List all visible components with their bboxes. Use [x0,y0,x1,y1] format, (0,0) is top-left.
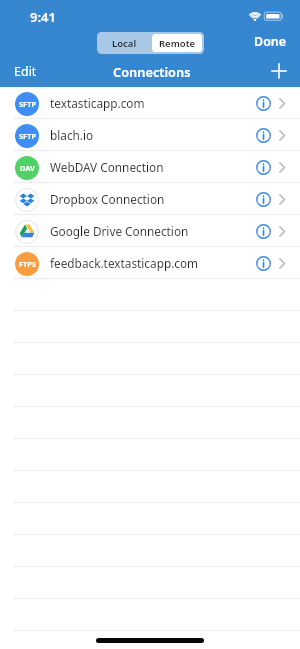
staticText: feedback.textasticapp.com [50,255,254,271]
button[interactable]: SFTP [0,87,300,118]
button[interactable]: Done [254,30,287,52]
staticText: Dropbox Connection [50,191,254,207]
button[interactable]: Add connection [266,58,292,84]
button[interactable]: Info [254,126,272,144]
staticText: blach.io [50,127,254,143]
button[interactable]: Info [254,158,272,176]
staticText: Connections [113,63,191,80]
staticText: 9:41 [30,8,56,26]
button[interactable]: Edit [14,58,37,84]
button[interactable]: DAV [0,151,300,182]
button[interactable]: Local [97,32,152,54]
staticText: SFTP [19,131,36,141]
button[interactable]: Info [254,254,272,272]
staticText: Local [112,37,137,50]
staticText: DAV [20,163,35,173]
button[interactable]: FTPS [0,247,300,278]
button[interactable]: Info [254,222,272,240]
staticText: SFTP [19,99,36,109]
button[interactable]: Dropbox Connection [0,183,300,214]
button[interactable]: Info [254,190,272,208]
button[interactable]: Google Drive Connection [0,215,300,246]
staticText: textasticapp.com [50,95,254,111]
staticText: Remote [159,37,196,50]
button[interactable]: SFTP [0,119,300,150]
button[interactable]: Info [254,94,272,112]
button[interactable]: Remote [152,34,202,52]
staticText: WebDAV Connection [50,159,254,175]
staticText: Google Drive Connection [50,223,254,239]
staticText: Done [254,33,287,50]
staticText: FTPS [19,259,36,269]
staticText: Edit [14,63,37,80]
